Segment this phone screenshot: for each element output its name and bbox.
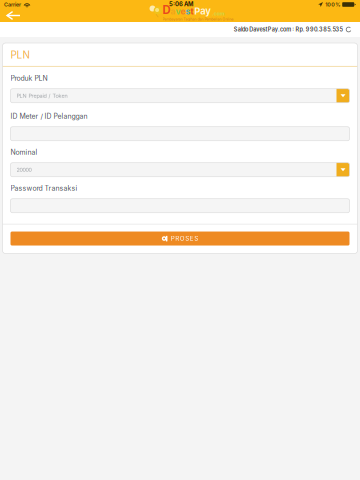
button[interactable]: PROSES: [10, 231, 349, 245]
staticText: .com: [212, 10, 225, 17]
staticText: e: [180, 6, 185, 17]
staticText: Produk PLN: [10, 74, 47, 82]
staticText: v: [175, 6, 180, 17]
staticText: D: [162, 3, 170, 17]
staticText: ID Meter / ID Pelanggan: [10, 112, 87, 120]
staticText: PLN Prepaid / Token: [16, 92, 67, 99]
button[interactable]: PLN Prepaid / Token: [10, 89, 349, 103]
staticText: Saldo DavestPay.com : Rp. 990.385.535: [234, 26, 343, 33]
staticText: 100%: [325, 1, 340, 8]
staticText: Nominal: [10, 148, 37, 156]
staticText: PLN: [10, 49, 29, 61]
staticText: Carrier: [4, 1, 21, 8]
staticText: Pay: [194, 5, 211, 17]
staticText: Password Transaksi: [10, 184, 77, 192]
staticText: PROSES: [171, 235, 198, 242]
staticText: s: [185, 6, 190, 17]
staticText: a: [170, 6, 175, 17]
staticText: 20000: [16, 166, 31, 173]
staticText: t: [190, 6, 193, 17]
button[interactable]: Back: [0, 9, 24, 22]
staticText: Pembayaran Tagihan dan Pembelian Online: [162, 17, 233, 21]
staticText: 5:06 AM: [169, 0, 193, 8]
button[interactable]: 20000: [10, 163, 349, 177]
